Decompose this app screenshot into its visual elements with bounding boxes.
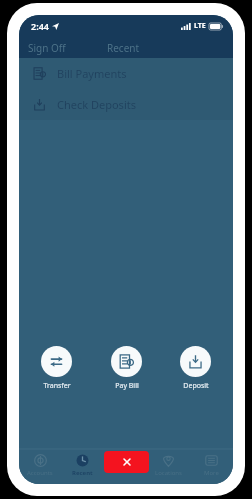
button[interactable]: Recent — [61, 449, 104, 484]
button[interactable]: Pay Bill — [105, 346, 148, 391]
staticText: Transfer — [43, 381, 71, 391]
staticText: Locations — [155, 469, 182, 477]
staticText: Recent — [107, 41, 140, 55]
button[interactable]: Close — [104, 451, 149, 473]
button[interactable]: More — [190, 449, 233, 484]
button[interactable]: Bill Payments — [19, 58, 233, 89]
staticText: LTE — [194, 21, 206, 31]
button[interactable]: Accounts — [19, 449, 61, 484]
button[interactable]: Recent — [107, 41, 140, 55]
staticText: Sign Off — [28, 41, 66, 55]
button[interactable]: Transfer — [35, 346, 78, 391]
staticText: Pay Bill — [115, 381, 139, 391]
button[interactable]: Deposit — [174, 346, 217, 391]
button[interactable]: Locations — [147, 449, 190, 484]
staticText: Recent — [72, 469, 93, 477]
staticText: Accounts — [27, 469, 53, 477]
button[interactable]: Check Deposits — [19, 89, 233, 120]
staticText: Bill Payments — [57, 66, 127, 81]
staticText: Check Deposits — [57, 97, 136, 112]
staticText: More — [204, 469, 219, 477]
staticText: 2:44 — [31, 20, 49, 32]
button[interactable]: Sign Off — [19, 41, 72, 55]
staticText: Deposit — [183, 381, 209, 391]
